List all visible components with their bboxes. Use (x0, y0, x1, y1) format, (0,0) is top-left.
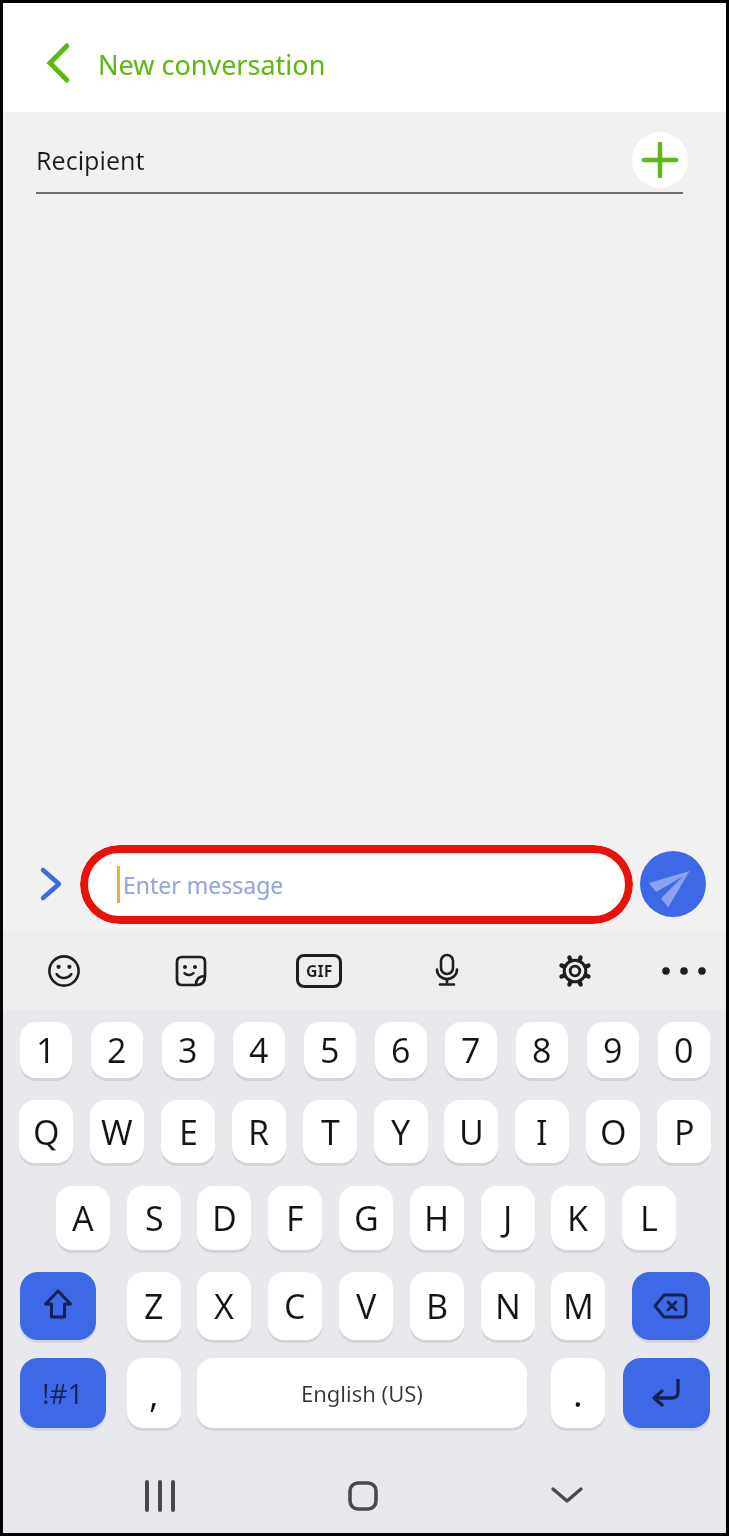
staticText: T (321, 1109, 340, 1155)
button[interactable]: P (657, 1100, 711, 1163)
button[interactable] (141, 1481, 179, 1511)
button[interactable]: R (232, 1100, 286, 1163)
staticText: A (72, 1195, 94, 1241)
button[interactable]: W (90, 1100, 144, 1163)
button[interactable]: I (515, 1100, 569, 1163)
staticText: 2 (107, 1027, 127, 1073)
button[interactable]: A (56, 1186, 110, 1250)
staticText: D (212, 1195, 237, 1241)
button[interactable]: G (339, 1186, 393, 1250)
button[interactable] (640, 851, 706, 917)
button[interactable]: O (586, 1100, 640, 1163)
staticText: N (495, 1283, 521, 1329)
staticText: H (424, 1195, 450, 1241)
button[interactable]: U (444, 1100, 498, 1163)
staticText: U (459, 1109, 484, 1155)
button[interactable] (660, 955, 708, 987)
button[interactable]: 2 (91, 1022, 143, 1078)
staticText: O (600, 1109, 627, 1155)
button[interactable] (174, 954, 208, 988)
button[interactable] (38, 867, 64, 901)
button[interactable] (80, 845, 633, 924)
button[interactable]: C (268, 1272, 322, 1340)
button[interactable]: . (551, 1358, 605, 1428)
button[interactable] (623, 1358, 710, 1428)
staticText: Z (144, 1283, 164, 1329)
button[interactable]: D (197, 1186, 251, 1250)
button[interactable]: 6 (375, 1022, 427, 1078)
staticText: Recipient (36, 143, 145, 177)
staticText: S (145, 1195, 164, 1241)
button[interactable]: 4 (233, 1022, 285, 1078)
staticText: P (674, 1109, 695, 1155)
button[interactable] (36, 40, 82, 86)
button[interactable]: Z (127, 1272, 181, 1340)
staticText: Y (391, 1109, 411, 1155)
staticText: 0 (674, 1027, 694, 1073)
button[interactable] (632, 132, 688, 188)
button[interactable]: 9 (587, 1022, 639, 1078)
button[interactable] (348, 1481, 378, 1511)
staticText: J (503, 1195, 513, 1241)
staticText: C (284, 1283, 306, 1329)
staticText: 7 (461, 1027, 481, 1073)
button[interactable]: V (339, 1272, 393, 1340)
staticText: F (286, 1195, 304, 1241)
staticText: L (640, 1195, 658, 1241)
staticText: , (149, 1369, 159, 1418)
button[interactable]: , (127, 1358, 181, 1428)
button[interactable]: 3 (162, 1022, 214, 1078)
button[interactable]: J (481, 1186, 535, 1250)
button[interactable]: 7 (445, 1022, 497, 1078)
staticText: 5 (320, 1027, 340, 1073)
button[interactable]: S (127, 1186, 181, 1250)
button[interactable] (551, 1485, 583, 1505)
button[interactable]: T (303, 1100, 357, 1163)
staticText: W (101, 1109, 133, 1155)
button[interactable]: 5 (304, 1022, 356, 1078)
button[interactable]: M (551, 1272, 605, 1340)
staticText: Q (33, 1109, 60, 1155)
button[interactable]: X (197, 1272, 251, 1340)
staticText: R (248, 1109, 270, 1155)
button[interactable]: GIF (296, 954, 342, 988)
button[interactable]: L (622, 1186, 676, 1250)
staticText: 1 (36, 1027, 56, 1073)
staticText: . (573, 1369, 583, 1418)
button[interactable]: K (551, 1186, 605, 1250)
button[interactable]: Y (374, 1100, 428, 1163)
staticText: 4 (249, 1027, 269, 1073)
button[interactable]: English (US) (197, 1358, 527, 1428)
button[interactable]: Q (19, 1100, 73, 1163)
button[interactable]: E (161, 1100, 215, 1163)
button[interactable]: !#1 (20, 1358, 106, 1428)
button[interactable]: H (410, 1186, 464, 1250)
button[interactable] (20, 1272, 96, 1340)
staticText: I (536, 1109, 548, 1155)
button[interactable] (557, 953, 593, 989)
staticText: 9 (603, 1027, 623, 1073)
button[interactable]: 0 (658, 1022, 710, 1078)
staticText: X (214, 1283, 234, 1329)
staticText: Enter message (123, 869, 284, 900)
staticText: M (563, 1283, 594, 1329)
button[interactable] (429, 953, 465, 989)
staticText: English (US) (301, 1378, 423, 1408)
staticText: New conversation (98, 46, 326, 83)
staticText: V (356, 1283, 377, 1329)
staticText: GIF (306, 960, 333, 982)
button[interactable]: N (481, 1272, 535, 1340)
staticText: K (567, 1195, 589, 1241)
staticText: E (179, 1109, 198, 1155)
button[interactable]: 8 (516, 1022, 568, 1078)
button[interactable] (632, 1272, 710, 1340)
button[interactable]: B (410, 1272, 464, 1340)
staticText: 6 (391, 1027, 411, 1073)
staticText: G (354, 1195, 379, 1241)
staticText: 3 (178, 1027, 198, 1073)
staticText: !#1 (42, 1374, 84, 1412)
staticText: 8 (532, 1027, 552, 1073)
button[interactable] (48, 955, 80, 987)
button[interactable]: F (268, 1186, 322, 1250)
button[interactable]: 1 (20, 1022, 72, 1078)
